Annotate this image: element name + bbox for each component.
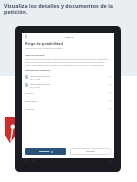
button[interactable]: Ubicación [25,105,111,113]
staticText: PDF · 820 KB [30,86,40,88]
staticText: Seguimiento [25,100,38,103]
staticText: PDF · 1.2 MB [30,78,40,80]
button[interactable]: Seguimiento [25,97,111,105]
staticText: Rechazar [86,150,96,153]
staticText: Descargar [39,150,50,153]
staticText: Lorem ipsum dolor sit amet consectetur a… [25,58,111,67]
button[interactable]: Historial [25,89,111,97]
staticText: Ubicación [25,108,35,111]
staticText: Sobre la solicitud [25,54,45,57]
staticText: Cedula-identidad.pdf [30,83,50,86]
staticText: Detalle [65,35,74,38]
staticText: Solicitud-firmada.pdf [30,75,50,78]
staticText: Visualiza los detalles y documentos de l… [4,2,124,16]
staticText: Historial [25,92,34,95]
staticText: Documentos adjuntos [25,69,51,72]
button[interactable]: Descargar [25,148,66,155]
staticText: Nro. 2024-0012345 · Pendiente de revisió… [25,47,63,50]
staticText: Riego de potabilidad [25,41,63,46]
button[interactable]: Rechazar [70,148,111,155]
button[interactable]: Solicitud-firmada.pdf [25,73,111,81]
button[interactable]: Back [22,33,114,40]
button[interactable]: Cedula-identidad.pdf [25,81,111,89]
button[interactable]: Back [22,33,30,40]
